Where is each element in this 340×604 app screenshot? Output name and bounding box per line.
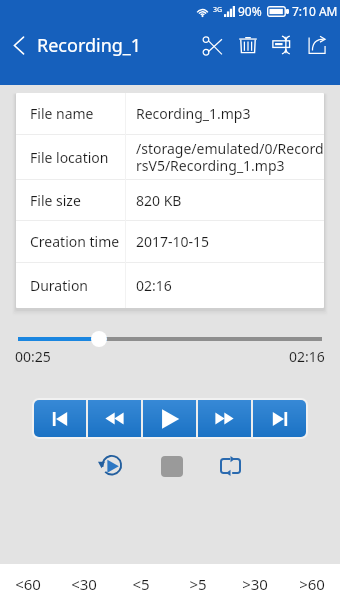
button[interactable]: Fast forward <box>198 400 251 437</box>
button[interactable]: Share <box>300 22 335 68</box>
staticText: Duration <box>30 276 125 295</box>
staticText: <60 <box>15 574 41 594</box>
staticText: 2017-10-15 <box>136 232 210 251</box>
staticText: /storage/emulated/0/Recorde rsV5/Recordi… <box>136 139 324 175</box>
staticText: File location <box>30 148 125 167</box>
button[interactable]: Repeat <box>208 444 252 488</box>
staticText: >30 <box>242 574 268 594</box>
staticText: <30 <box>71 574 97 594</box>
button[interactable]: >60 <box>283 564 340 604</box>
button[interactable]: <30 <box>56 564 112 604</box>
staticText: Recording_1.mp3 <box>136 104 251 123</box>
staticText: 820 KB <box>136 191 182 210</box>
staticText: 3G <box>213 5 223 15</box>
staticText: <5 <box>132 574 150 594</box>
staticText: 90% <box>238 3 262 19</box>
button[interactable]: Back <box>0 22 37 68</box>
button[interactable]: Cut <box>195 22 230 68</box>
staticText: 02:16 <box>136 276 172 295</box>
staticText: 02:16 <box>289 347 325 366</box>
button[interactable]: Rename <box>265 22 300 68</box>
staticText: 7:10 AM <box>292 3 338 19</box>
button[interactable]: Stop <box>150 444 194 488</box>
button[interactable]: >5 <box>169 564 226 604</box>
staticText: Creation time <box>30 232 125 251</box>
staticText: >60 <box>299 574 325 594</box>
button[interactable]: >30 <box>226 564 283 604</box>
staticText: File size <box>30 191 125 210</box>
staticText: >5 <box>189 574 207 594</box>
button[interactable]: Next <box>253 400 306 437</box>
staticText: 00:25 <box>15 347 51 366</box>
button[interactable]: Delete <box>230 22 265 68</box>
button[interactable]: Rewind <box>88 400 141 437</box>
staticText: File name <box>30 104 125 123</box>
button[interactable]: <60 <box>0 564 56 604</box>
button[interactable]: Replay <box>89 444 133 488</box>
button[interactable]: Play <box>143 400 196 437</box>
staticText: Recording_1 <box>37 33 142 58</box>
button[interactable]: Previous <box>34 400 86 437</box>
button[interactable]: <5 <box>112 564 169 604</box>
